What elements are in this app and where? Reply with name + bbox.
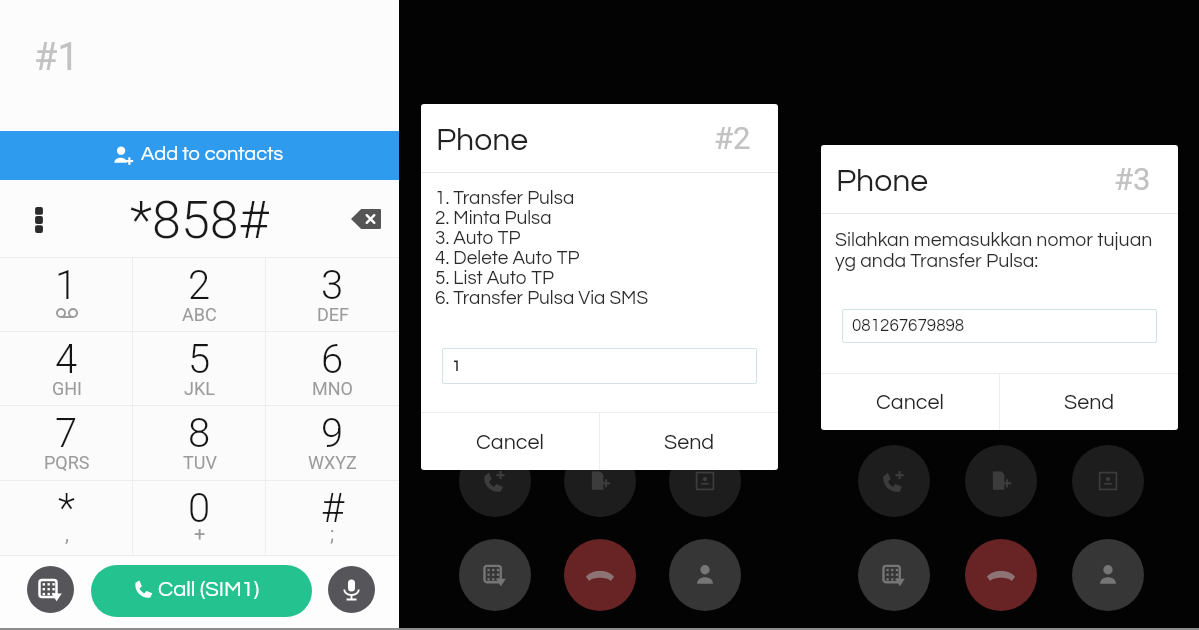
staticText: Phone: [436, 124, 529, 157]
staticText: Add to contacts: [141, 144, 284, 165]
staticText: *858#: [130, 190, 269, 251]
staticText: Cancel: [876, 391, 944, 413]
staticText: *: [58, 485, 75, 532]
staticText: 2. Minta Pulsa: [435, 208, 552, 228]
staticText: ;: [330, 522, 335, 545]
button[interactable]: Add to contacts: [0, 131, 399, 180]
staticText: 3: [321, 262, 344, 309]
button[interactable]: End call: [965, 539, 1037, 611]
staticText: PQRS: [44, 452, 90, 473]
button[interactable]: Send: [1000, 374, 1178, 430]
button[interactable]: Add call: [459, 445, 531, 517]
button[interactable]: Record: [1072, 445, 1144, 517]
button[interactable]: 7: [0, 405, 133, 480]
button[interactable]: 8: [133, 405, 266, 480]
button[interactable]: 4: [0, 331, 133, 405]
staticText: 9: [321, 410, 344, 457]
staticText: 4: [55, 336, 78, 383]
staticText: 6. Transfer Pulsa Via SMS: [435, 288, 649, 308]
staticText: #3: [1114, 161, 1151, 197]
staticText: 8: [188, 410, 211, 457]
button[interactable]: 3: [266, 257, 399, 331]
button[interactable]: Send: [600, 413, 778, 470]
staticText: +: [194, 522, 206, 545]
button[interactable]: Keypad: [459, 539, 531, 611]
button[interactable]: Backspace: [351, 209, 381, 229]
button[interactable]: 0: [133, 480, 266, 555]
button[interactable]: Keypad: [858, 539, 930, 611]
button[interactable]: *: [0, 480, 133, 555]
button[interactable]: 6: [266, 331, 399, 405]
staticText: #2: [714, 120, 751, 156]
button[interactable]: Add call: [858, 445, 930, 517]
staticText: WXYZ: [308, 452, 357, 473]
button[interactable]: Contacts: [1072, 539, 1144, 611]
staticText: 5: [188, 336, 211, 383]
button[interactable]: 1: [0, 257, 133, 331]
button[interactable]: 9: [266, 405, 399, 480]
staticText: 3. Auto TP: [435, 228, 521, 248]
staticText: Cancel: [476, 431, 544, 453]
button[interactable]: More options: [32, 207, 46, 233]
staticText: MNO: [312, 378, 353, 399]
button[interactable]: Cancel: [421, 413, 599, 470]
staticText: 4. Delete Auto TP: [435, 248, 580, 268]
staticText: Silahkan memasukkan nomor tujuan yg anda…: [835, 230, 1153, 271]
button[interactable]: Voice search: [328, 566, 375, 613]
button[interactable]: Cancel: [821, 374, 999, 430]
button[interactable]: 5: [133, 331, 266, 405]
staticText: 081267679898: [852, 317, 965, 335]
staticText: DEF: [317, 304, 349, 325]
button[interactable]: Add note: [564, 445, 636, 517]
staticText: 1: [55, 262, 78, 309]
staticText: 1: [452, 359, 461, 374]
button[interactable]: Contacts: [669, 539, 741, 611]
staticText: 5. List Auto TP: [435, 268, 554, 288]
staticText: ABC: [182, 304, 217, 325]
staticText: Call (SIM1): [158, 578, 260, 601]
staticText: 0: [188, 485, 211, 532]
button[interactable]: 2: [133, 257, 266, 331]
staticText: 2: [188, 262, 211, 309]
staticText: 1. Transfer Pulsa: [435, 188, 575, 208]
button[interactable]: End call: [564, 539, 636, 611]
staticText: Send: [664, 431, 715, 453]
staticText: #: [321, 485, 345, 532]
button[interactable]: 081267679898: [842, 309, 1157, 343]
staticText: TUV: [183, 452, 217, 473]
staticText: 7: [55, 410, 78, 457]
staticText: Phone: [836, 165, 929, 198]
staticText: Send: [1064, 391, 1115, 413]
staticText: GHI: [52, 378, 82, 399]
staticText: #1: [34, 35, 79, 80]
button[interactable]: Record: [669, 445, 741, 517]
button[interactable]: Add note: [965, 445, 1037, 517]
button[interactable]: #: [266, 480, 399, 555]
button[interactable]: Call (SIM1): [91, 565, 312, 617]
staticText: ,: [65, 522, 69, 545]
staticText: 6: [321, 336, 344, 383]
staticText: JKL: [184, 378, 215, 399]
button[interactable]: Hide keypad: [27, 566, 74, 613]
button[interactable]: 1: [442, 348, 757, 384]
